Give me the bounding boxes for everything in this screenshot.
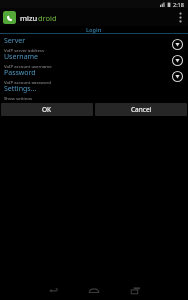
staticText: Username <box>4 52 39 62</box>
staticText: Login <box>86 26 102 33</box>
staticText: Server <box>4 36 26 46</box>
button[interactable]: Back <box>46 283 60 297</box>
button[interactable]: Server <box>0 36 188 52</box>
button[interactable]: Choose Server <box>172 39 183 50</box>
button[interactable]: Cancel <box>95 103 187 116</box>
button[interactable]: Password <box>0 68 188 84</box>
button[interactable]: OK <box>1 103 93 116</box>
button[interactable]: Settings... <box>0 84 188 100</box>
button[interactable]: Username <box>0 52 188 68</box>
button[interactable]: Choose Password <box>172 71 183 82</box>
staticText: VoIP account username <box>4 63 52 68</box>
button[interactable]: Choose Username <box>172 55 183 66</box>
button[interactable]: Home <box>87 283 101 297</box>
staticText: VoIP server address <box>4 47 44 52</box>
staticText: Show settings <box>4 95 33 100</box>
staticText: Cancel <box>131 105 152 114</box>
button[interactable]: Recent apps <box>128 283 142 297</box>
staticText: Password <box>4 68 36 78</box>
staticText: droid <box>38 13 57 23</box>
staticText: VoIP account password <box>4 79 51 84</box>
staticText: 2:18 <box>173 1 184 8</box>
button[interactable]: Mizudroid <box>3 11 16 24</box>
staticText: OK <box>42 105 52 114</box>
staticText: Settings... <box>4 84 37 94</box>
staticText: mizu <box>20 13 38 23</box>
button[interactable]: More options <box>172 8 188 26</box>
